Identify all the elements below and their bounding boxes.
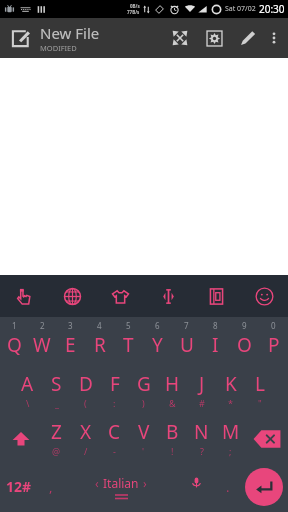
staticText: ! [171,445,174,457]
staticText: ; [229,445,232,457]
staticText: R [94,332,106,358]
staticText: 0 [271,320,276,331]
button[interactable]: Edit file name [0,18,40,58]
button[interactable]: Handwriting [0,275,48,317]
staticText: 7 [184,320,189,331]
staticText: C [108,419,121,445]
staticText: & [169,397,176,409]
staticText: 6 [155,320,160,331]
staticText: J [199,371,205,397]
staticText: H [165,371,180,397]
button[interactable]: C [100,415,129,463]
staticText: " [258,397,262,409]
staticText: : [113,397,116,409]
button[interactable]: J [187,367,216,415]
button[interactable]: M [216,415,245,463]
staticText: # [199,397,205,409]
button[interactable]: 8 [201,317,230,367]
staticText: M [222,419,240,445]
staticText: Italian [103,475,139,491]
button[interactable]: Theme [96,275,144,317]
staticText: 0B/s [130,3,140,9]
staticText: X [80,419,92,445]
button[interactable]: X [71,415,100,463]
staticText: O [237,332,252,358]
button[interactable]: 0 [259,317,288,367]
button[interactable]: 6 [143,317,172,367]
staticText: ( [84,397,87,409]
button[interactable]: . [215,463,241,510]
staticText: K [225,371,237,397]
staticText: MODIFIED [40,43,77,53]
button[interactable]: Fullscreen [163,18,197,58]
staticText: ' [142,445,145,457]
staticText: V [138,419,150,445]
staticText: \ [26,397,30,409]
staticText: @ [52,445,61,457]
button[interactable]: 4 [85,317,114,367]
button[interactable]: K [216,367,245,415]
staticText: - [113,445,116,457]
button[interactable]: Enter [245,468,283,506]
button[interactable]: Shift [0,415,42,463]
staticText: ? [200,445,204,457]
button[interactable]: G [129,367,158,415]
staticText: Q [7,332,22,358]
staticText: 4 [97,320,102,331]
staticText: › [143,475,147,491]
button[interactable]: , [38,463,64,510]
button[interactable]: L [245,367,274,415]
button[interactable]: 7 [172,317,201,367]
staticText: F [110,371,120,397]
staticText: P [268,332,280,358]
button[interactable]: Language [48,275,96,317]
button[interactable]: Clipboard [192,275,240,317]
button[interactable]: A [13,367,42,415]
button[interactable]: N [187,415,216,463]
staticText: 77B/s [127,9,140,15]
staticText: I [212,332,219,358]
button[interactable]: 2 [28,317,56,367]
button[interactable]: 3 [56,317,85,367]
button[interactable]: Cursor control [144,275,192,317]
staticText: G [137,371,151,397]
button[interactable]: Settings [197,18,231,58]
staticText: S [51,371,62,397]
staticText: A [21,371,34,397]
button[interactable]: 9 [230,317,259,367]
staticText: ) [142,397,145,409]
staticText: Sat 07/02 [225,4,256,14]
button[interactable]: Voice input [178,463,215,510]
staticText: 20:30 [259,2,285,16]
staticText: New File [40,23,100,43]
button[interactable]: S [42,367,71,415]
button[interactable]: Edit [231,18,263,58]
button[interactable]: 1 [0,317,28,367]
button[interactable]: Z [42,415,71,463]
button[interactable]: Emoji [240,275,288,317]
staticText: D [79,371,93,397]
button[interactable]: H [158,367,187,415]
staticText: T [123,332,134,358]
button[interactable]: 5 [114,317,143,367]
button[interactable]: B [158,415,187,463]
button[interactable]: 12# [0,463,38,510]
staticText: E [65,332,76,358]
button[interactable]: Backspace [245,415,288,463]
staticText: 2 [40,320,45,331]
staticText: Y [152,332,163,358]
button[interactable]: F [100,367,129,415]
staticText: 9 [242,320,247,331]
staticText: 12# [6,477,32,496]
staticText: 3 [68,320,73,331]
staticText: / [84,445,88,457]
button[interactable]: More options [263,18,285,58]
staticText: 8 [213,320,218,331]
staticText: ‹ [95,475,99,491]
staticText: L [255,371,265,397]
staticText: _ [55,397,59,409]
button[interactable]: V [129,415,158,463]
staticText: Z [51,419,62,445]
button[interactable]: Space [64,463,178,510]
button[interactable]: D [71,367,100,415]
